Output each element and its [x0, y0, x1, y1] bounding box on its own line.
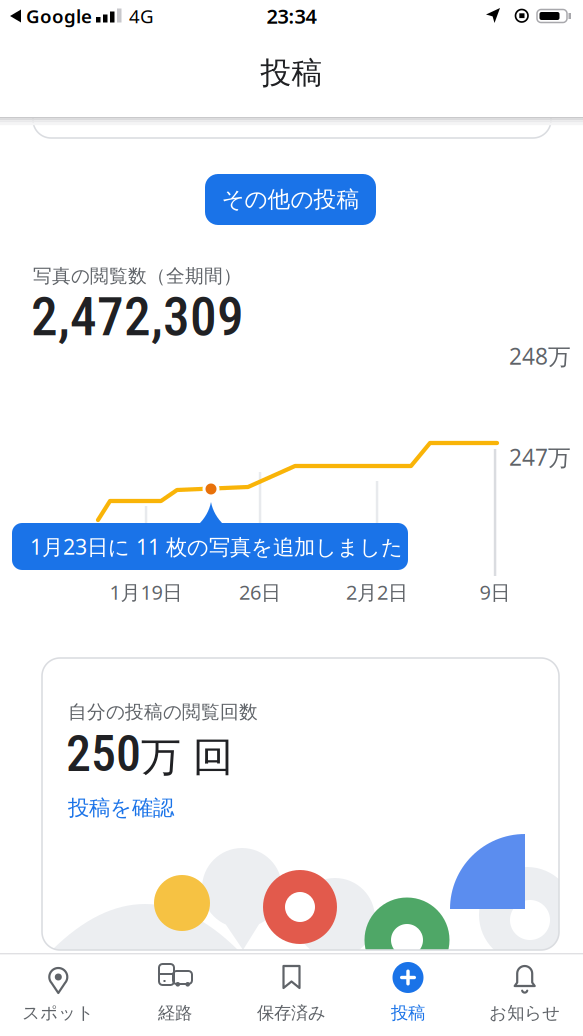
- button[interactable]: お知らせ: [471, 962, 579, 1024]
- staticText: 23:34: [266, 3, 316, 29]
- button[interactable]: 保存済み: [237, 962, 345, 1024]
- staticText: 4G: [129, 4, 154, 28]
- button[interactable]: スポット: [4, 962, 112, 1024]
- staticText: 自分の投稿の閲覧回数: [68, 700, 258, 723]
- staticText: 9日: [479, 579, 510, 605]
- staticText: 保存済み: [257, 1002, 326, 1024]
- staticText: 経路: [158, 1002, 192, 1024]
- button[interactable]: 投稿を確認: [68, 794, 228, 822]
- button[interactable]: その他の投稿: [205, 174, 376, 225]
- staticText: 2,472,309: [31, 286, 244, 348]
- staticText: 投稿: [391, 1002, 425, 1024]
- staticText: 2月2日: [346, 579, 408, 605]
- staticText: 26日: [239, 579, 281, 605]
- staticText: その他の投稿: [221, 186, 359, 213]
- staticText: 1月19日: [109, 579, 182, 605]
- staticText: 1月23日に 11 枚の写真を追加しました: [30, 532, 403, 561]
- staticText: 247万: [509, 442, 571, 472]
- staticText: お知らせ: [489, 1002, 560, 1024]
- button[interactable]: 経路: [121, 962, 229, 1024]
- staticText: 投稿を確認: [68, 795, 174, 821]
- button[interactable]: 投稿: [354, 962, 462, 1024]
- staticText: 248万: [509, 341, 571, 371]
- staticText: 250万 回: [66, 725, 233, 782]
- staticText: Google: [26, 4, 92, 28]
- staticText: スポット: [22, 1002, 94, 1024]
- staticText: 投稿: [260, 54, 322, 92]
- staticText: 写真の閲覧数（全期間）: [33, 264, 242, 287]
